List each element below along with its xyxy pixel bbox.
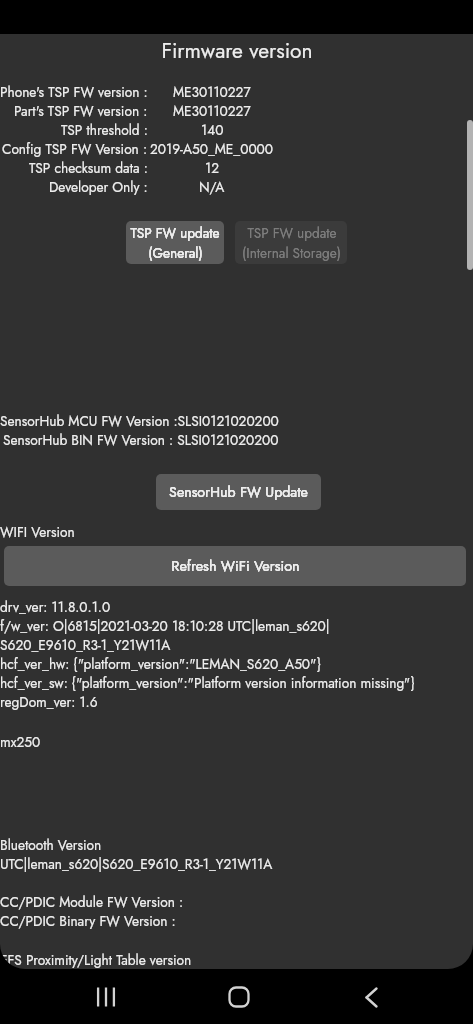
staticText: (Internal Storage): [242, 243, 341, 263]
staticText: 2019-A50_ME_0000: [150, 139, 274, 159]
staticText: (General): [148, 243, 203, 263]
staticText: SensorHub MCU FW Version :SLSI0121020200: [0, 411, 279, 431]
button[interactable]: Home: [209, 969, 269, 1024]
staticText: (Internal Storage): [242, 243, 341, 263]
staticText: TSP threshold :: [61, 120, 148, 140]
staticText: 12: [205, 158, 219, 178]
staticText: Firmware version: [161, 36, 313, 66]
button[interactable]: TSP FW update: [126, 221, 224, 264]
staticText: mx250: [0, 732, 41, 752]
staticText: SensorHub FW Update: [169, 482, 308, 503]
staticText: Config TSP FW Version :: [2, 139, 148, 159]
staticText: Phone's TSP FW version :: [0, 82, 148, 102]
staticText: Refresh WiFi Version: [171, 556, 300, 577]
staticText: hcf_ver_hw: {"platform_version":"LEMAN_S…: [0, 654, 321, 674]
staticText: S620_E9610_R3-1_Y21W11A: [0, 635, 171, 655]
staticText: Refresh WiFi Version: [171, 556, 300, 577]
staticText: Developer Only :: [49, 177, 148, 197]
staticText: CC/PDIC Module FW Version :: [0, 892, 184, 912]
staticText: 140: [201, 120, 224, 140]
staticText: (General): [148, 243, 203, 263]
button[interactable]: TSP FW update: [235, 221, 347, 264]
staticText: SensorHub FW Update: [169, 482, 308, 503]
staticText: drv_ver: 11.8.0.1.0: [0, 597, 111, 617]
staticText: SensorHub BIN FW Version : SLSI012102020…: [3, 430, 279, 450]
staticText: WIFI Version: [0, 522, 75, 542]
staticText: Part's TSP FW version :: [14, 101, 148, 121]
staticText: Bluetooth Version: [0, 835, 102, 855]
staticText: CC/PDIC Binary FW Version :: [0, 911, 176, 931]
button[interactable]: SensorHub FW Update: [156, 474, 321, 510]
staticText: regDom_ver: 1.6: [0, 692, 98, 712]
button[interactable]: Back: [341, 969, 401, 1024]
staticText: ME30110227: [173, 82, 251, 102]
staticText: UTC|leman_s620|S620_E9610_R3-1_Y21W11A: [0, 854, 273, 874]
staticText: N/A: [199, 177, 225, 197]
staticText: TSP FW update: [130, 223, 220, 243]
button[interactable]: Refresh WiFi Version: [4, 546, 466, 586]
staticText: TSP FW update: [247, 223, 337, 243]
staticText: hcf_ver_sw: {"platform_version":"Platfor…: [0, 673, 415, 693]
staticText: TSP FW update: [130, 223, 220, 243]
staticText: f/w_ver: O|6815|2021-03-20 18:10:28 UTC|…: [0, 616, 330, 636]
staticText: TSP checksum data :: [29, 158, 148, 178]
staticText: TSP FW update: [247, 223, 337, 243]
staticText: ME30110227: [173, 101, 251, 121]
staticText: EFS Proximity/Light Table version: [0, 950, 192, 969]
button[interactable]: Recent apps: [76, 969, 136, 1024]
